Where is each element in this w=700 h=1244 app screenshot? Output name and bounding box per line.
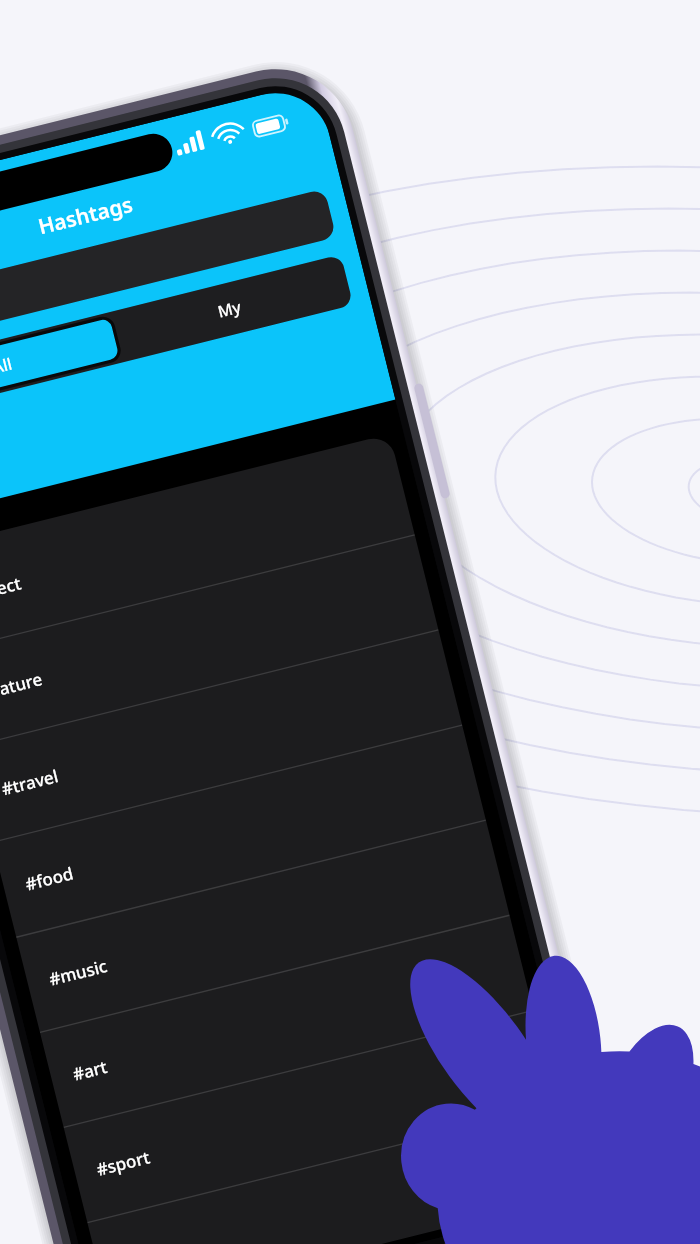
button[interactable]: Hashtags screen device mockup: [0, 0, 700, 1244]
